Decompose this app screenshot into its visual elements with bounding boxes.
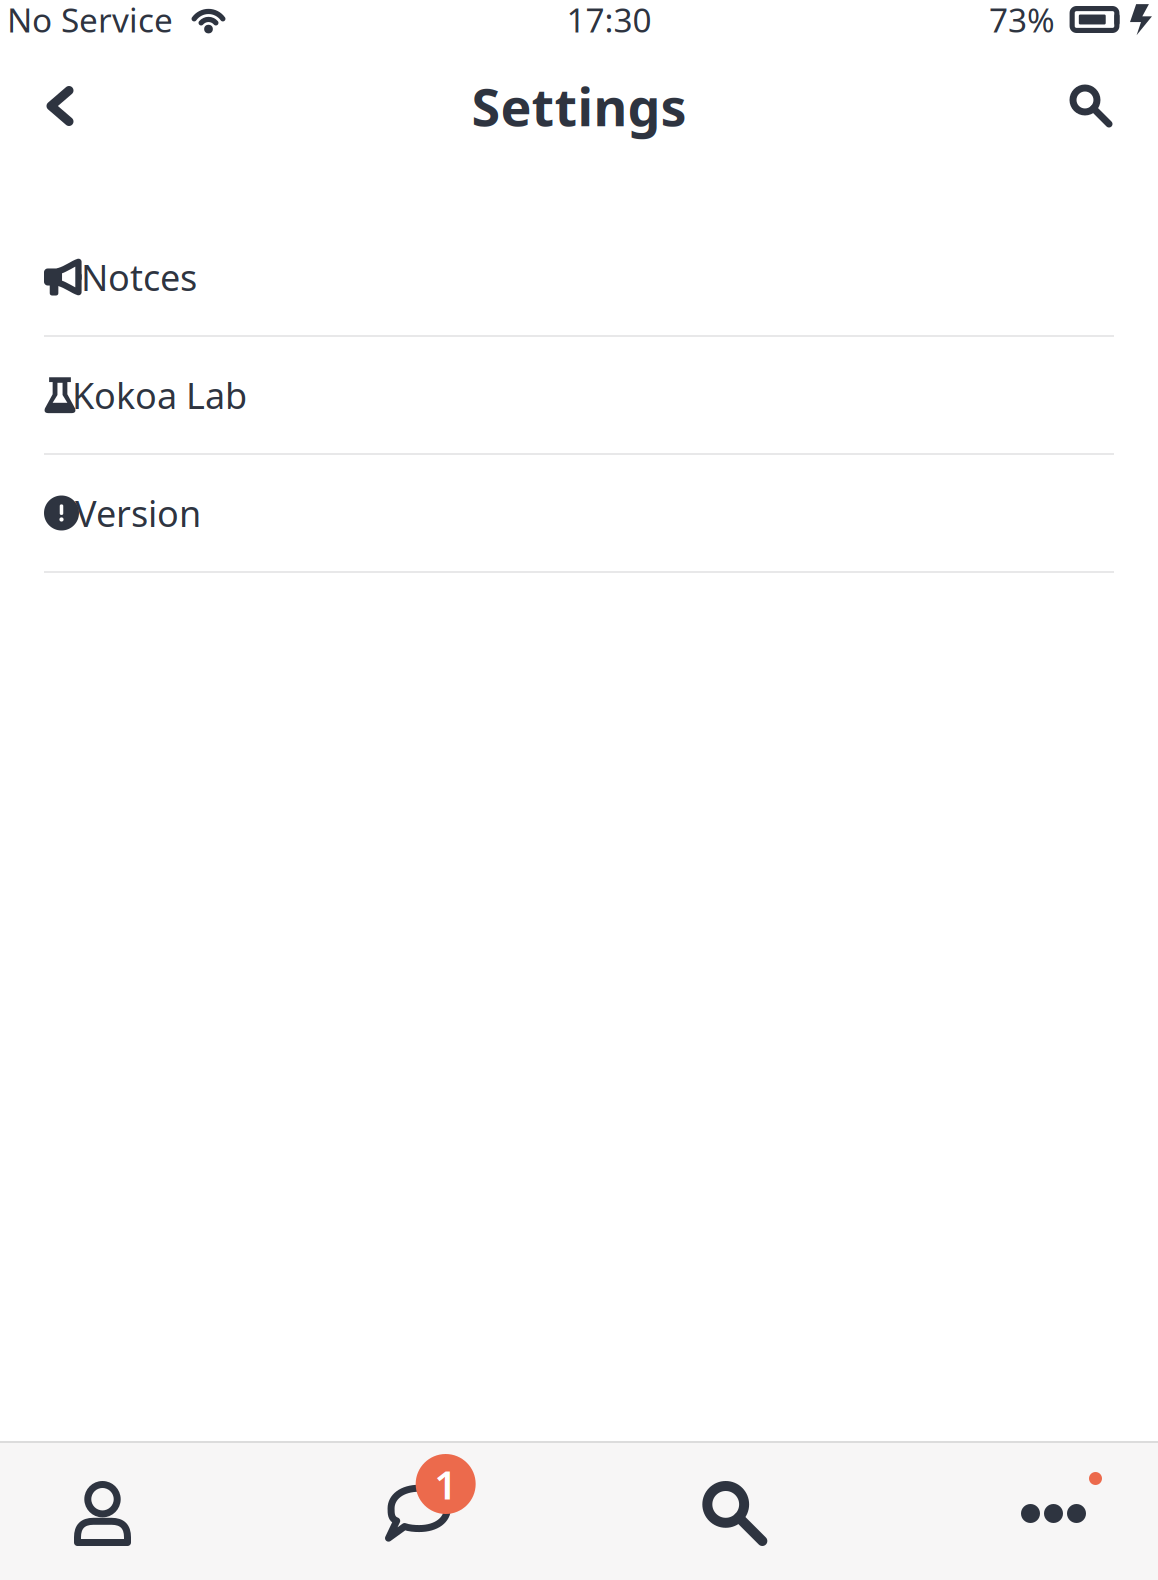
staticText: Settings (471, 71, 686, 141)
staticText: No Service (7, 0, 173, 42)
staticText: Version (75, 489, 201, 537)
staticText: 17:30 (566, 0, 651, 42)
button[interactable]: More (1021, 1443, 1083, 1580)
button[interactable]: Search (1045, 47, 1137, 165)
button[interactable]: Search (702, 1443, 767, 1580)
button[interactable]: Back (13, 47, 107, 165)
button[interactable]: Version (0, 455, 1158, 573)
button[interactable]: Notces (0, 219, 1158, 337)
staticText: 73% (989, 0, 1055, 42)
staticText: 1 (434, 1457, 457, 1510)
button[interactable]: Friends (74, 1443, 131, 1580)
staticText: Kokoa Lab (72, 371, 247, 419)
staticText: Notces (81, 253, 197, 301)
button[interactable]: Kokoa Lab (0, 337, 1158, 455)
button[interactable]: Chats (385, 1443, 449, 1580)
